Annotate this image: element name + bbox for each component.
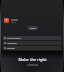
button[interactable]: App icon (4, 18, 60, 23)
button[interactable] (3, 46, 61, 50)
other: App icon (4, 18, 9, 23)
staticText: Make the right (18, 57, 47, 62)
button[interactable] (27, 26, 38, 30)
button[interactable] (3, 36, 61, 40)
button[interactable] (3, 41, 61, 45)
staticText: choice (27, 62, 38, 67)
